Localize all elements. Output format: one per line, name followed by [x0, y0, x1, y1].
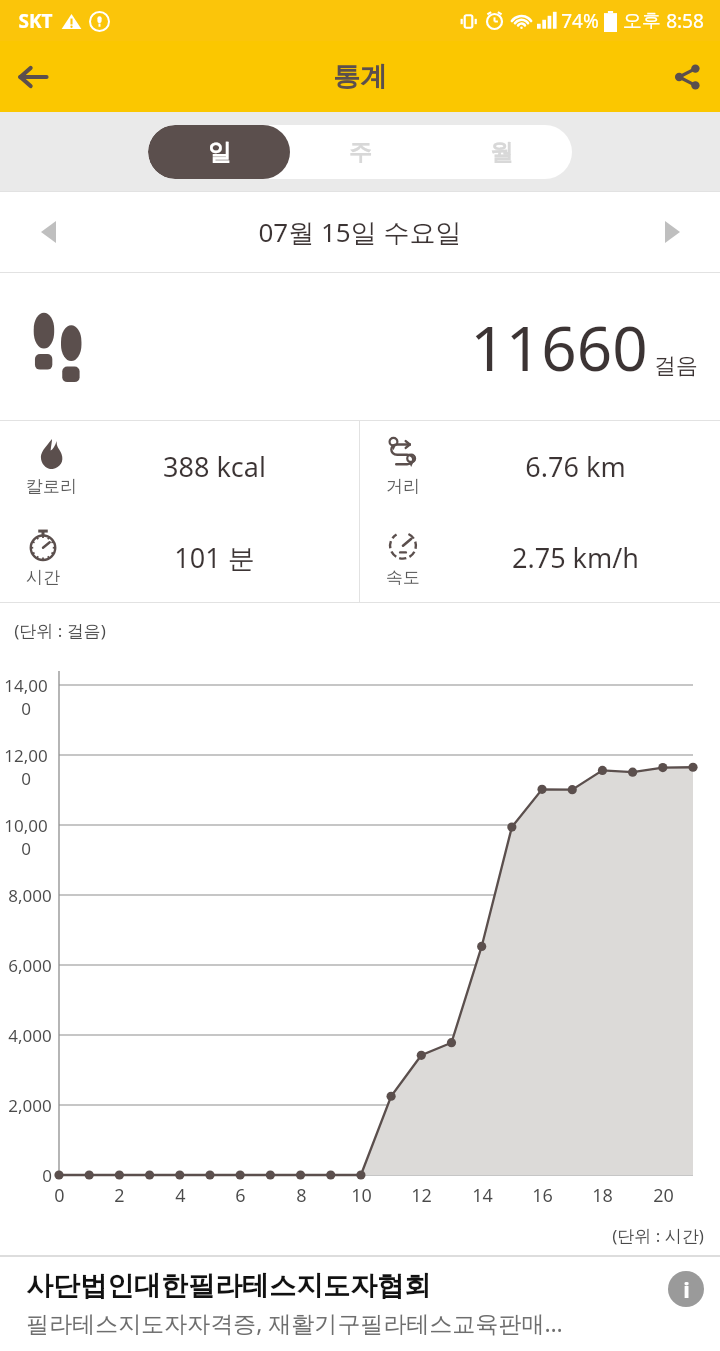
staticText: 월: [490, 138, 513, 167]
staticText: 속도: [386, 567, 420, 588]
staticText: (단위 : 시간): [612, 1224, 704, 1247]
staticText: 18: [592, 1183, 613, 1208]
staticText: 오후: [623, 9, 661, 33]
button[interactable]: 속도: [360, 512, 720, 603]
staticText: 8: [296, 1183, 307, 1208]
button[interactable]: 사단법인대한필라테스지도자협회: [0, 1255, 720, 1351]
staticText: 거리: [386, 476, 420, 497]
button[interactable]: Previous day: [24, 208, 72, 256]
staticText: 12,000: [0, 744, 52, 790]
button[interactable]: Ad info: [668, 1271, 704, 1307]
staticText: 사단법인대한필라테스지도자협회: [26, 1269, 431, 1303]
staticText: 6.76 km: [525, 448, 626, 485]
staticText: 통계: [333, 60, 387, 94]
staticText: 걸음: [654, 352, 698, 380]
staticText: 0: [42, 1164, 52, 1187]
button[interactable]: 월: [431, 125, 572, 179]
staticText: 4,000: [8, 1024, 52, 1047]
staticText: SKT: [18, 8, 53, 34]
button[interactable]: Back: [0, 44, 66, 110]
staticText: 20: [653, 1183, 674, 1208]
staticText: 101 분: [174, 539, 255, 576]
staticText: 2: [114, 1183, 125, 1208]
staticText: 일: [208, 138, 231, 167]
button[interactable]: Next day: [648, 208, 696, 256]
staticText: 10: [351, 1183, 372, 1208]
staticText: 6,000: [8, 954, 52, 977]
button[interactable]: 거리: [360, 421, 720, 512]
staticText: 14: [472, 1183, 493, 1208]
button[interactable]: 칼로리: [0, 421, 359, 512]
staticText: 칼로리: [26, 476, 77, 497]
staticText: 11660: [470, 305, 648, 389]
staticText: 8:58: [666, 8, 704, 34]
staticText: 2.75 km/h: [512, 539, 639, 576]
staticText: (단위 : 걸음): [14, 619, 106, 642]
staticText: 388 kcal: [163, 448, 266, 485]
button[interactable]: 일: [148, 125, 290, 179]
staticText: 74%: [561, 8, 599, 34]
staticText: 14,000: [0, 674, 52, 720]
staticText: 12: [411, 1183, 432, 1208]
staticText: 6: [235, 1183, 246, 1208]
button[interactable]: 주: [290, 125, 431, 179]
staticText: 4: [175, 1183, 186, 1208]
staticText: 16: [532, 1183, 553, 1208]
staticText: 0: [54, 1183, 65, 1208]
staticText: 8,000: [8, 884, 52, 907]
button[interactable]: 시간: [0, 512, 359, 603]
button[interactable]: Share: [654, 44, 720, 110]
staticText: 주: [349, 138, 372, 167]
staticText: i: [683, 1274, 690, 1304]
staticText: 시간: [26, 567, 60, 588]
staticText: 07월 15일 수요일: [258, 214, 462, 250]
staticText: 필라테스지도자자격증, 재활기구필라테스교육판매…: [26, 1307, 563, 1338]
staticText: 2,000: [8, 1094, 52, 1117]
staticText: 10,000: [0, 814, 52, 860]
